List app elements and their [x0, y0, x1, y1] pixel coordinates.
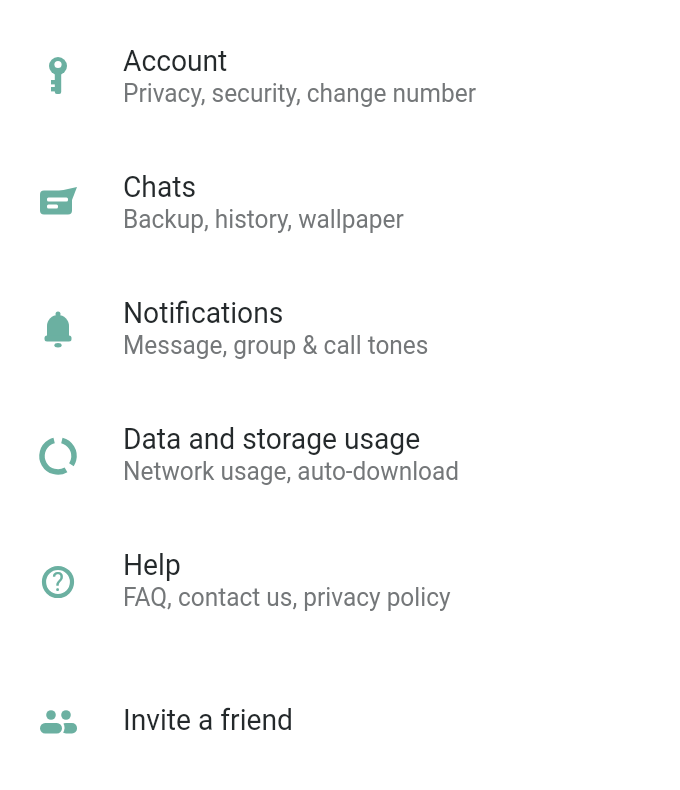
- button[interactable]: Chats: [0, 140, 680, 266]
- button[interactable]: Invite a friend: [0, 658, 680, 784]
- staticText: Network usage, auto-download: [123, 456, 459, 486]
- button[interactable]: Notifications: [0, 266, 680, 392]
- staticText: Invite a friend: [123, 702, 293, 737]
- staticText: ?: [52, 568, 64, 597]
- button[interactable]: Account: [0, 14, 680, 140]
- staticText: Privacy, security, change number: [123, 78, 476, 108]
- button[interactable]: Data and storage usage: [0, 392, 680, 518]
- staticText: Help: [123, 547, 181, 582]
- staticText: FAQ, contact us, privacy policy: [123, 582, 451, 612]
- staticText: Backup, history, wallpaper: [123, 204, 404, 234]
- staticText: Notifications: [123, 295, 284, 330]
- staticText: Account: [123, 43, 228, 78]
- staticText: Data and storage usage: [123, 421, 421, 456]
- staticText: Chats: [123, 169, 196, 204]
- staticText: Message, group & call tones: [123, 330, 428, 360]
- button[interactable]: ?: [0, 518, 680, 644]
